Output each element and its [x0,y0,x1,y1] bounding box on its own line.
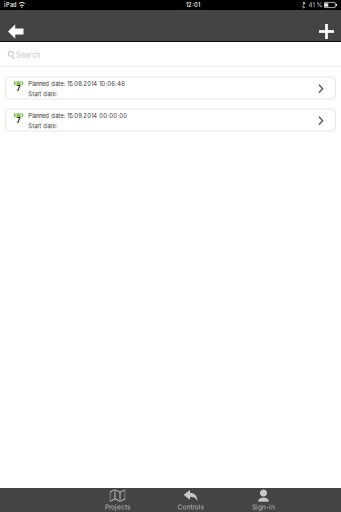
staticText: Planned date: 15.09.2014 00:00:00 [28,112,127,119]
staticText: Projects [105,503,130,511]
staticText: Planned date: 15.08.2014 10:06:46 [28,80,125,87]
button[interactable]: Controls [154,488,227,512]
button[interactable]: 7 [5,109,335,131]
staticText: 7 [17,84,21,93]
button[interactable]: Sign-in [227,488,300,512]
button[interactable]: Back [0,10,37,41]
staticText: 41 % [308,1,322,9]
staticText: Controls [177,503,203,511]
staticText: Sign-in [252,503,275,511]
staticText: iPad [4,2,17,8]
button[interactable]: 7 [5,77,335,99]
button[interactable]: Search [0,42,341,66]
staticText: Start date: [28,123,57,130]
staticText: 12:01 [186,2,200,8]
staticText: 7 [17,116,21,125]
staticText: Search [16,51,40,59]
button[interactable]: Add [305,10,341,41]
staticText: Start date: [28,91,57,98]
button[interactable]: Projects [81,488,154,512]
